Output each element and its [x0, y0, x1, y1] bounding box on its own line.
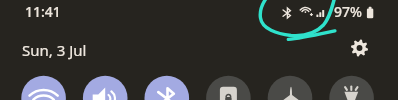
staticText: 97% — [334, 2, 362, 21]
button[interactable]: Sound — [83, 76, 128, 100]
button[interactable]: Bluetooth — [145, 76, 190, 100]
button[interactable]: Flashlight — [329, 76, 374, 100]
button[interactable]: Settings — [348, 36, 372, 60]
button[interactable]: Auto-rotate — [206, 76, 251, 100]
button[interactable]: Airplane mode — [268, 76, 313, 100]
button[interactable]: Internet — [21, 76, 66, 100]
staticText: 11:41 — [25, 2, 61, 21]
staticText: Sun, 3 Jul — [22, 40, 87, 60]
